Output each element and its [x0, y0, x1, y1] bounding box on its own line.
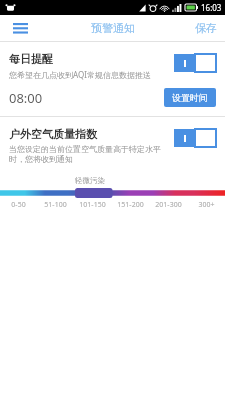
staticText: 201-300 [155, 200, 182, 210]
staticText: 当您设定的当前位置空气质量高于特定水平时，您将收到通知 [9, 144, 166, 165]
staticText: 保存 [195, 21, 217, 35]
staticText: 轻微污染 [75, 176, 105, 185]
button[interactable]: 保存 [187, 15, 225, 41]
staticText: 101-150 [79, 200, 106, 210]
staticText: 16:03 [201, 2, 222, 13]
button[interactable]: AQI threshold slider [0, 188, 225, 198]
button[interactable]: 设置时间 [164, 88, 216, 107]
staticText: 户外空气质量指数 [9, 127, 97, 141]
button[interactable]: Menu [6, 16, 34, 40]
staticText: 151-200 [117, 200, 144, 210]
staticText: 51-100 [44, 200, 67, 210]
staticText: 300+ [198, 200, 215, 210]
staticText: 设置时间 [172, 92, 208, 103]
staticText: 08:00 [9, 89, 43, 107]
staticText: 每日提醒 [9, 52, 53, 66]
staticText: 预警通知 [91, 21, 135, 35]
staticText: 0-50 [11, 200, 26, 210]
staticText: 您希望在几点收到AQI常规信息数据推送 [9, 69, 151, 80]
button[interactable]: Toggle [174, 129, 216, 147]
button[interactable]: Toggle [174, 54, 216, 72]
